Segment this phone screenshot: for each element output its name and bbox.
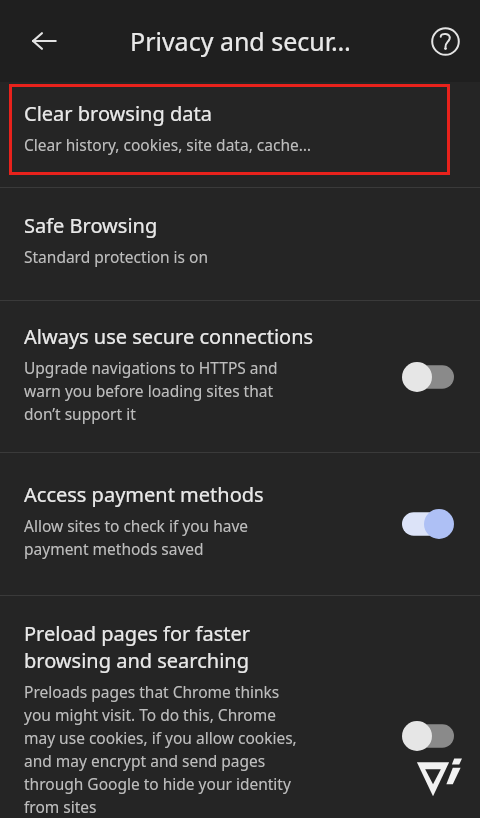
button[interactable]: Clear browsing data	[0, 82, 480, 187]
staticText: Privacy and secur…	[130, 24, 351, 58]
staticText: Standard protection is on	[24, 246, 209, 267]
button[interactable]: Help	[423, 19, 467, 63]
staticText: Access payment methods	[24, 481, 264, 508]
button[interactable]: Safe Browsing	[0, 188, 480, 300]
staticText: Safe Browsing	[24, 212, 158, 239]
staticText: Preload pages for faster browsing and se…	[24, 620, 250, 674]
staticText: Preloads pages that Chrome thinks you mi…	[24, 681, 297, 818]
button[interactable]: Preload pages for faster browsing and se…	[0, 596, 480, 818]
button[interactable]: Access payment methods	[0, 453, 480, 595]
button[interactable]: Toggle on	[398, 502, 458, 546]
staticText: Upgrade navigations to HTTPS and warn yo…	[24, 357, 278, 425]
staticText: Clear browsing data	[24, 100, 212, 127]
button[interactable]: Toggle off	[398, 355, 458, 399]
staticText: Allow sites to check if you have payment…	[24, 515, 249, 560]
button[interactable]: Always use secure connections	[0, 301, 480, 452]
staticText: Always use secure connections	[24, 323, 314, 350]
button[interactable]: Back	[20, 17, 68, 65]
button[interactable]: Toggle off	[398, 714, 458, 758]
staticText: Clear history, cookies, site data, cache…	[24, 134, 311, 155]
